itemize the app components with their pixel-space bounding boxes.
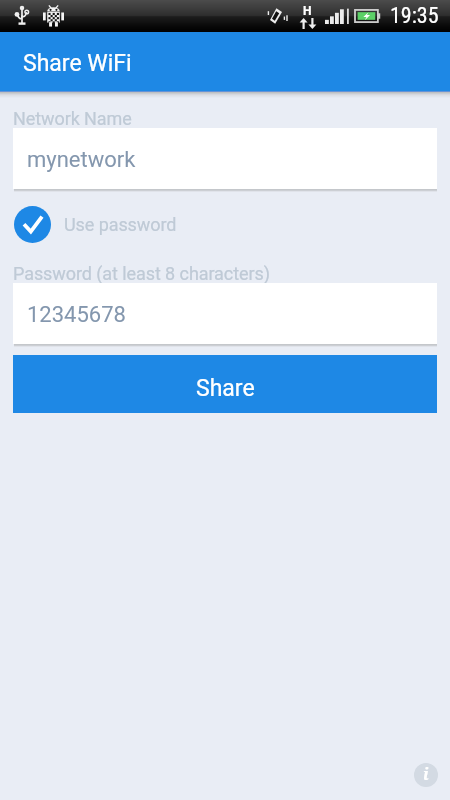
button[interactable]: Use password: [14, 206, 177, 243]
staticText: Network Name: [13, 108, 132, 129]
staticText: 12345678: [27, 302, 126, 328]
staticText: Share: [196, 375, 255, 402]
staticText: Share WiFi: [23, 50, 132, 77]
button[interactable]: 12345678: [13, 283, 437, 344]
staticText: H: [303, 4, 312, 18]
staticText: i: [423, 763, 429, 785]
button[interactable]: Info: [414, 763, 438, 787]
staticText: Password (at least 8 characters): [13, 263, 270, 284]
button[interactable]: Share: [13, 355, 437, 413]
button[interactable]: mynetwork: [13, 128, 437, 189]
staticText: mynetwork: [27, 147, 136, 173]
staticText: Use password: [64, 214, 177, 235]
staticText: 19:35: [390, 3, 439, 29]
